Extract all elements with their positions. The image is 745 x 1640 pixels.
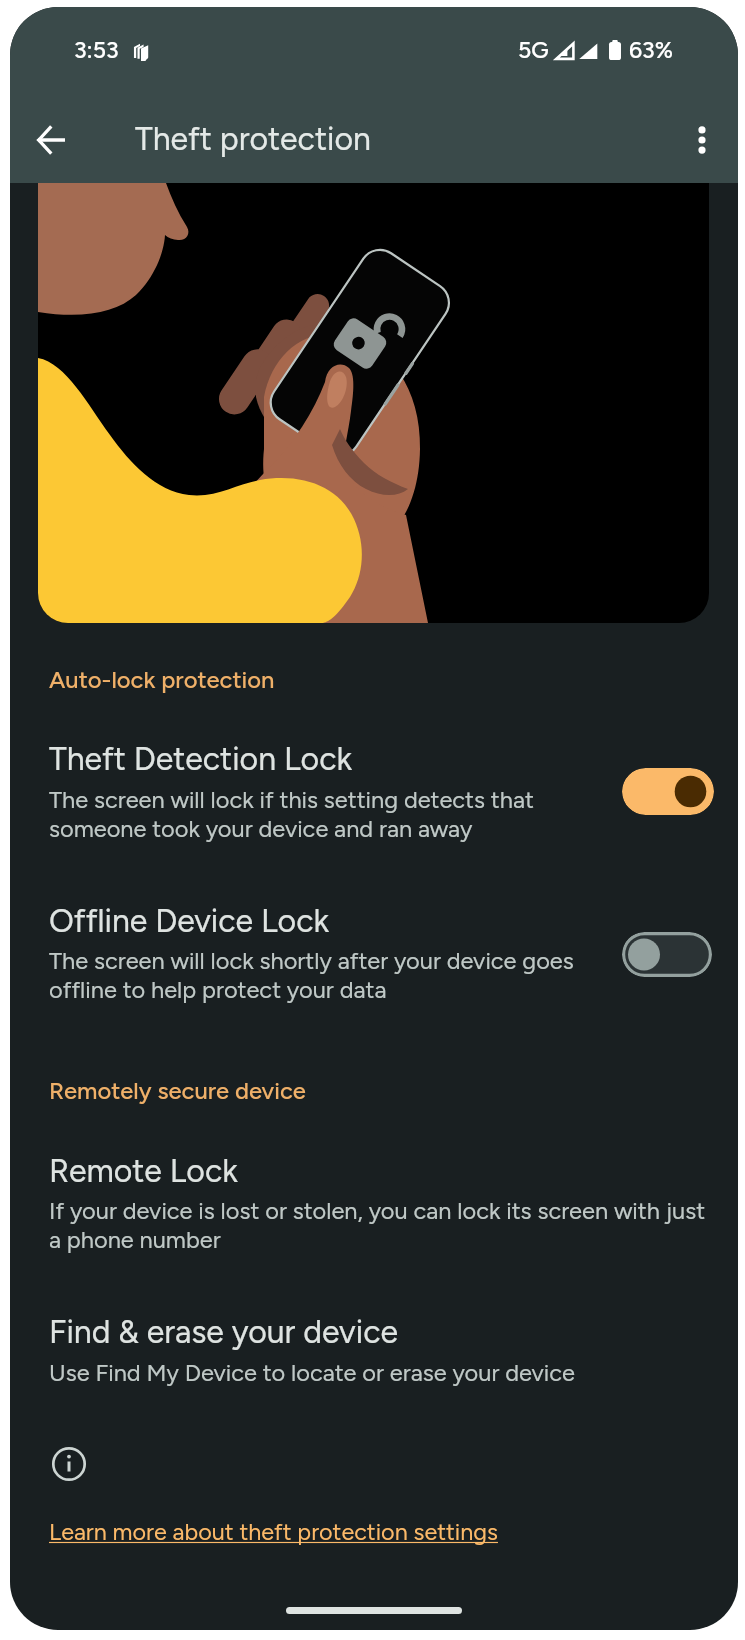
staticText: 63%: [629, 36, 673, 64]
staticText: 3:53: [74, 36, 119, 64]
button[interactable]: Back: [27, 116, 75, 164]
staticText: Remotely secure device: [49, 1076, 306, 1105]
staticText: 5G: [518, 36, 549, 64]
button[interactable]: Info: [49, 1444, 89, 1484]
button[interactable]: More options: [678, 116, 726, 164]
staticText: Offline Device Lock: [49, 902, 329, 940]
button[interactable]: Offline Device Lock, off: [622, 932, 712, 977]
staticText: Theft protection: [135, 120, 371, 158]
staticText: Auto-lock protection: [49, 665, 275, 694]
staticText: Use Find My Device to locate or erase yo…: [49, 1359, 575, 1387]
button[interactable]: Learn more about theft protection settin…: [10, 7, 459, 35]
staticText: The screen will lock if this setting det…: [49, 786, 534, 843]
staticText: Theft Detection Lock: [49, 740, 352, 778]
staticText: Remote Lock: [49, 1152, 238, 1190]
button[interactable]: Theft Detection Lock, on: [622, 768, 714, 815]
staticText: The screen will lock shortly after your …: [49, 947, 574, 1004]
staticText: Find & erase your device: [49, 1313, 398, 1351]
staticText: If your device is lost or stolen, you ca…: [49, 1197, 706, 1254]
